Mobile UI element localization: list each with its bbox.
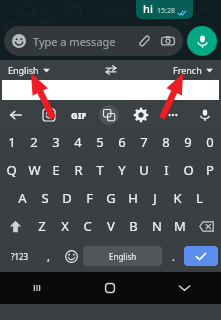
staticText: 3 bbox=[52, 133, 60, 151]
button[interactable]: J bbox=[144, 184, 166, 212]
staticText: F bbox=[86, 189, 93, 207]
button[interactable]: R bbox=[67, 156, 89, 184]
other: Emoji bbox=[12, 34, 26, 48]
button[interactable]: F bbox=[78, 184, 100, 212]
staticText: H bbox=[128, 189, 138, 207]
staticText: O bbox=[183, 161, 194, 179]
button[interactable]: W bbox=[23, 156, 45, 184]
button[interactable]: Q bbox=[0, 156, 23, 184]
button[interactable]: Home bbox=[73, 272, 147, 304]
button[interactable]: X bbox=[53, 212, 76, 240]
button[interactable]: B bbox=[122, 212, 145, 240]
button[interactable]: A bbox=[11, 184, 34, 212]
staticText: English bbox=[109, 251, 137, 262]
staticText: J bbox=[153, 189, 157, 207]
button[interactable]: 9 bbox=[177, 128, 199, 156]
staticText: Z bbox=[38, 217, 46, 235]
staticText: 7 bbox=[140, 133, 148, 151]
staticText: English bbox=[8, 64, 39, 76]
button[interactable]: Recents bbox=[0, 272, 73, 304]
button[interactable]: 3 bbox=[45, 128, 67, 156]
button[interactable]: K bbox=[166, 184, 188, 212]
button[interactable]: L bbox=[188, 184, 210, 212]
staticText: P bbox=[206, 161, 214, 179]
staticText: 6 bbox=[118, 133, 126, 151]
button[interactable]: 2 bbox=[23, 128, 45, 156]
button[interactable]: Z bbox=[30, 212, 53, 240]
button[interactable]: Y bbox=[111, 156, 133, 184]
staticText: U bbox=[139, 161, 149, 179]
button[interactable]: GIF bbox=[71, 109, 87, 121]
staticText: 8 bbox=[162, 133, 170, 151]
button[interactable]: G bbox=[100, 184, 122, 212]
button[interactable]: S bbox=[34, 184, 56, 212]
staticText: A bbox=[18, 189, 27, 207]
button[interactable]: ?123 bbox=[3, 240, 37, 272]
button[interactable]: Voice input bbox=[195, 105, 215, 125]
button[interactable]: E bbox=[45, 156, 67, 184]
button[interactable]: Back bbox=[6, 105, 26, 125]
button[interactable]: C bbox=[76, 212, 99, 240]
button[interactable]: English bbox=[6, 62, 52, 78]
staticText: , bbox=[47, 249, 50, 264]
staticText: French bbox=[173, 64, 202, 76]
staticText: 5 bbox=[96, 133, 104, 151]
button[interactable]: I bbox=[155, 156, 177, 184]
button[interactable]: Emoji bbox=[59, 240, 83, 272]
button[interactable]: N bbox=[145, 212, 168, 240]
button[interactable]: Translate bbox=[99, 105, 119, 125]
button[interactable]: Swap languages bbox=[104, 63, 118, 77]
button[interactable]: Backspace bbox=[191, 212, 221, 240]
staticText: S bbox=[41, 189, 49, 207]
staticText: 15:28 bbox=[157, 6, 175, 16]
button[interactable]: 0 bbox=[199, 128, 221, 156]
button[interactable]: 7 bbox=[133, 128, 155, 156]
button[interactable]: V bbox=[99, 212, 122, 240]
staticText: GIF bbox=[71, 109, 87, 121]
staticText: 2 bbox=[30, 133, 38, 151]
staticText: hi bbox=[143, 1, 153, 16]
button[interactable]: Enter bbox=[184, 246, 218, 266]
staticText: Type a message bbox=[33, 34, 116, 49]
button[interactable]: French bbox=[171, 62, 215, 78]
button[interactable]: More options bbox=[163, 105, 183, 125]
button[interactable]: P bbox=[199, 156, 221, 184]
button[interactable]: T bbox=[89, 156, 111, 184]
button[interactable]: Stickers bbox=[39, 105, 59, 125]
staticText: L bbox=[196, 189, 203, 207]
button[interactable]: 1 bbox=[0, 128, 23, 156]
button[interactable]: English bbox=[83, 246, 162, 266]
staticText: B bbox=[129, 217, 138, 235]
button[interactable]: 6 bbox=[111, 128, 133, 156]
staticText: Q bbox=[6, 161, 17, 179]
button[interactable]: H bbox=[122, 184, 144, 212]
button[interactable]: Period bbox=[162, 240, 184, 272]
button[interactable]: 8 bbox=[155, 128, 177, 156]
button[interactable]: Voice message bbox=[187, 26, 217, 56]
button[interactable]: D bbox=[56, 184, 78, 212]
button[interactable]: 4 bbox=[67, 128, 89, 156]
staticText: 4 bbox=[74, 133, 82, 151]
staticText: W bbox=[28, 161, 41, 179]
button[interactable] bbox=[2, 80, 219, 100]
staticText: K bbox=[173, 189, 182, 207]
button[interactable]: Emoji bbox=[4, 26, 183, 56]
staticText: E bbox=[52, 161, 60, 179]
button[interactable]: 5 bbox=[89, 128, 111, 156]
staticText: 0 bbox=[206, 133, 214, 151]
button[interactable]: U bbox=[133, 156, 155, 184]
staticText: N bbox=[152, 217, 162, 235]
staticText: M bbox=[174, 217, 186, 235]
button[interactable]: Hide keyboard bbox=[147, 272, 221, 304]
button[interactable]: O bbox=[177, 156, 199, 184]
button[interactable]: Shift bbox=[0, 212, 30, 240]
staticText: I bbox=[164, 161, 169, 179]
button[interactable]: Attach bbox=[136, 34, 150, 48]
staticText: X bbox=[61, 217, 69, 235]
button[interactable]: Settings bbox=[131, 105, 151, 125]
staticText: C bbox=[83, 217, 92, 235]
button[interactable]: Camera bbox=[161, 34, 175, 48]
staticText: 9 bbox=[184, 133, 192, 151]
button[interactable]: M bbox=[168, 212, 191, 240]
button[interactable]: Comma bbox=[37, 240, 59, 272]
